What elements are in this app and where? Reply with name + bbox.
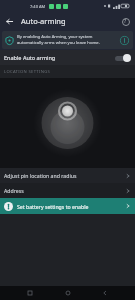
staticText: Set battery settings to enable: [17, 203, 89, 210]
staticText: Adjust pin location and radius: [4, 172, 77, 179]
button[interactable]: Enable Auto arming: [0, 50, 135, 65]
staticText: Auto-arming: [21, 16, 66, 26]
button[interactable]: Back: [3, 15, 16, 28]
button[interactable]: Adjust pin location and radius: [0, 168, 135, 183]
staticText: By enabling Auto Arming, your system: [17, 34, 93, 40]
staticText: LOCATION SETTINGS: [4, 69, 51, 75]
button[interactable]: Help: [119, 15, 132, 28]
button[interactable]: Back: [98, 286, 112, 300]
button[interactable]: Set battery settings to enable: [0, 198, 135, 214]
staticText: 7:40 AM: [30, 4, 46, 9]
staticText: Address: [4, 187, 24, 194]
staticText: Enable Auto arming: [4, 54, 56, 61]
button[interactable]: Recents: [23, 286, 37, 300]
button[interactable]: Address: [0, 183, 135, 198]
button[interactable]: More info: [118, 34, 130, 46]
button[interactable]: Home: [61, 286, 75, 300]
staticText: ?: [124, 18, 127, 25]
staticText: automatically arms when you leave home.: [17, 40, 100, 46]
button[interactable]: By enabling Auto Arming, your system: [2, 31, 133, 49]
